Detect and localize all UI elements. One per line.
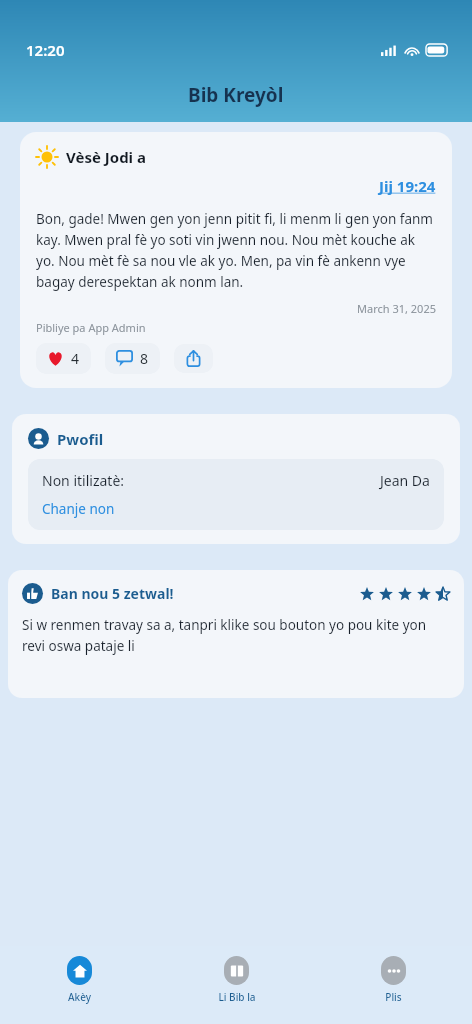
- staticText: 8: [140, 349, 149, 368]
- staticText: Bib Kreyòl: [188, 82, 284, 108]
- button[interactable]: Li Bib la: [158, 946, 315, 1024]
- staticText: Vèsè Jodi a: [66, 147, 146, 167]
- staticText: Pwofil: [57, 429, 104, 449]
- button[interactable]: Vèsè Jodi a: [20, 132, 452, 388]
- staticText: 12:20: [26, 40, 65, 60]
- staticText: Plis: [385, 990, 402, 1004]
- staticText: Pibliye pa App Admin: [36, 320, 146, 335]
- button[interactable]: Share: [174, 344, 213, 373]
- button[interactable]: Ban nou 5 zetwal!: [8, 570, 464, 698]
- button[interactable]: Pwofil: [12, 414, 460, 544]
- button[interactable]: Akèy: [0, 946, 158, 1024]
- staticText: Ban nou 5 zetwal!: [51, 584, 174, 603]
- staticText: 4: [71, 349, 80, 368]
- staticText: Non itilizatè:: [42, 471, 125, 490]
- staticText: Jean Da: [380, 471, 430, 490]
- staticText: Si w renmen travay sa a, tanpri klike so…: [22, 616, 450, 655]
- button[interactable]: Jij 19:24: [379, 176, 436, 196]
- staticText: Bon, gade! Mwen gen yon jenn pitit fi, l…: [36, 210, 436, 291]
- button[interactable]: Chanje non: [42, 500, 115, 518]
- staticText: Li Bib la: [218, 990, 256, 1004]
- button[interactable]: Plis: [315, 946, 472, 1024]
- button[interactable]: 4: [36, 343, 91, 374]
- staticText: March 31, 2025: [357, 301, 436, 316]
- staticText: Akèy: [68, 990, 91, 1004]
- button[interactable]: 8: [105, 343, 160, 374]
